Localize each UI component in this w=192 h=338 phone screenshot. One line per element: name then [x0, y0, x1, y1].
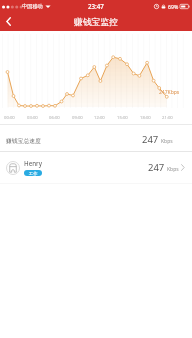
staticText: 247: [148, 161, 165, 174]
staticText: 赚钱宝监控: [74, 17, 118, 28]
staticText: 18:00: [140, 115, 151, 121]
staticText: 工作: [29, 171, 38, 176]
staticText: 03:00: [27, 115, 38, 121]
staticText: 00:00: [4, 115, 15, 121]
staticText: 69%: [168, 3, 179, 10]
button[interactable]: 赚钱宝总速度: [0, 125, 192, 151]
staticText: 06:00: [49, 115, 60, 121]
staticText: Kbps: [167, 166, 179, 173]
staticText: 15:00: [117, 115, 128, 121]
staticText: 09:00: [72, 115, 83, 121]
staticText: 中国移动: [22, 3, 43, 10]
other: Details: [181, 164, 185, 171]
staticText: Henry: [24, 159, 42, 167]
staticText: 12:00: [94, 115, 105, 121]
staticText: 247: [142, 133, 159, 146]
staticText: Kbps: [161, 138, 173, 145]
staticText: 赚钱宝总速度: [6, 137, 41, 144]
staticText: 21:00: [162, 115, 173, 121]
staticText: 23:47: [88, 2, 104, 10]
button[interactable]: Henry: [0, 152, 192, 183]
button[interactable]: Back: [0, 12, 17, 31]
staticText: 247Kbps: [159, 89, 180, 96]
